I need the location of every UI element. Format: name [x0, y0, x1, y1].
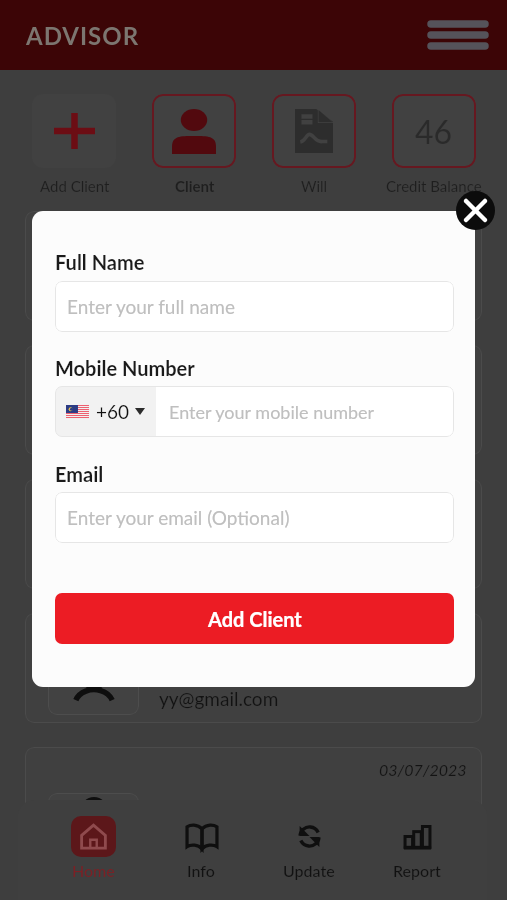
button[interactable]: 03/07/2023 [25, 211, 482, 321]
staticText: Add Client [40, 177, 110, 195]
button[interactable]: +60 [55, 386, 156, 437]
button[interactable]: Will [272, 94, 356, 168]
staticText: Will [301, 177, 328, 195]
button[interactable]: Close [456, 191, 495, 230]
button[interactable]: Credit Balance [392, 94, 476, 168]
button[interactable]: Info [147, 816, 255, 880]
staticText: ADVISOR [26, 21, 140, 50]
staticText: Home [72, 861, 115, 880]
button[interactable]: 03/07/2023 [25, 747, 482, 857]
button[interactable]: Report [363, 816, 471, 880]
button[interactable]: Update [255, 816, 363, 880]
button[interactable]: Enter your full name [55, 281, 454, 332]
staticText: Info [187, 861, 215, 880]
staticText: yy@gmail.com [159, 821, 279, 844]
staticText: 03/07/2023 [379, 224, 467, 243]
staticText: Credit Balance [386, 177, 482, 195]
staticText: 46 [415, 112, 453, 150]
staticText: Enter your email (Optional) [67, 506, 290, 529]
staticText: yy@gmail.com [159, 687, 279, 710]
staticText: Email [55, 462, 104, 486]
staticText: Client [175, 177, 215, 195]
button[interactable]: 03/07/2023 [25, 345, 482, 455]
staticText: 03/07/2023 [379, 760, 467, 779]
staticText: Report [393, 861, 441, 880]
button[interactable]: Menu [422, 12, 494, 58]
staticText: Enter your mobile number [169, 401, 375, 423]
staticText: 03/07/2023 [379, 626, 467, 645]
button[interactable]: Enter your email (Optional) [55, 492, 454, 543]
staticText: Enter your full name [67, 295, 235, 318]
staticText: Mobile Number [55, 356, 195, 380]
button[interactable]: 03/07/2023 [25, 479, 482, 589]
staticText: 03/07/2023 [379, 492, 467, 511]
button[interactable]: Add Client [32, 94, 116, 168]
staticText: yy@gmail.com [159, 285, 279, 308]
staticText: Add Client [208, 607, 302, 631]
button[interactable]: Home [39, 816, 147, 880]
staticText: Full Name [55, 250, 145, 274]
button[interactable]: Client [152, 94, 236, 168]
button[interactable]: Add Client [55, 593, 454, 644]
staticText: yy@gmail.com [159, 419, 279, 442]
staticText: Update [283, 861, 335, 880]
staticText: +60 [96, 400, 130, 423]
button[interactable]: 03/07/2023 [25, 613, 482, 723]
